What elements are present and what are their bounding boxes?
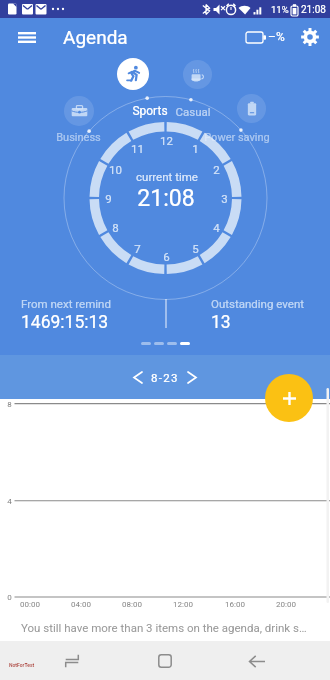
staticText: 1469:15:13 — [21, 312, 109, 333]
staticText: –% — [268, 30, 285, 44]
staticText: 21:08 — [137, 185, 195, 212]
staticText: 21:08 — [301, 4, 326, 16]
staticText: 1 — [192, 142, 199, 155]
staticText: Agenda — [63, 26, 128, 48]
staticText: 11% — [271, 4, 289, 15]
staticText: 8-23 — [151, 371, 179, 384]
button[interactable]: Previous day — [125, 364, 151, 390]
button[interactable]: Menu — [12, 22, 42, 52]
staticText: 8 — [112, 221, 119, 234]
staticText: Power saving — [204, 131, 270, 144]
staticText: Outstanding event — [211, 297, 304, 310]
staticText: 08:00 — [122, 600, 142, 609]
button[interactable]: Business — [64, 96, 94, 126]
staticText: 0 — [7, 593, 12, 602]
button[interactable]: Back — [242, 646, 272, 676]
staticText: 6 — [163, 250, 170, 263]
staticText: current time — [136, 170, 198, 183]
staticText: 9 — [105, 192, 112, 205]
staticText: You still have more than 3 items on the … — [21, 621, 307, 634]
button[interactable]: Next day — [179, 364, 205, 390]
button[interactable]: Settings — [296, 23, 324, 51]
staticText: 20:00 — [276, 600, 296, 609]
staticText: 5 — [192, 242, 199, 255]
staticText: Business — [56, 131, 101, 144]
staticText: Casual — [175, 105, 211, 118]
staticText: 04:00 — [71, 600, 91, 609]
button[interactable]: Sports — [117, 58, 149, 90]
button[interactable]: Home — [150, 646, 180, 676]
staticText: 11 — [131, 142, 144, 155]
button[interactable]: Recent apps — [57, 646, 87, 676]
staticText: 3 — [221, 192, 228, 205]
staticText: NotForTest — [9, 662, 35, 668]
button[interactable]: Power saving — [237, 94, 266, 123]
staticText: 16:00 — [225, 600, 245, 609]
staticText: 12 — [160, 134, 173, 147]
staticText: 12:00 — [173, 600, 193, 609]
staticText: 00:00 — [20, 600, 40, 609]
staticText: 7 — [134, 242, 141, 255]
button[interactable]: Battery status — [243, 26, 288, 48]
staticText: 4 — [7, 497, 12, 506]
button[interactable]: Casual — [183, 60, 212, 89]
staticText: 2 — [213, 163, 220, 176]
staticText: 13 — [211, 312, 231, 333]
staticText: 4 — [213, 221, 220, 234]
staticText: 8 — [7, 400, 12, 409]
staticText: 10 — [109, 163, 122, 176]
staticText: Sports — [132, 104, 168, 118]
staticText: From next remind — [21, 297, 111, 310]
button[interactable]: Add event — [265, 374, 313, 422]
